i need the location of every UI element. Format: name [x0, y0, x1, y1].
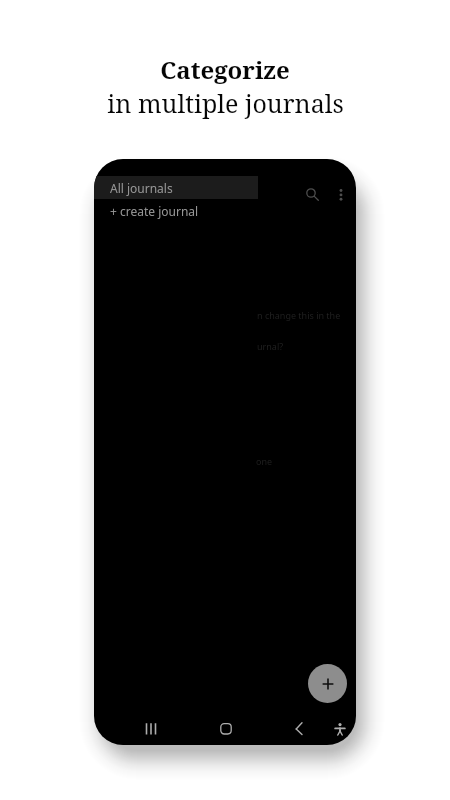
staticText: All journals	[110, 180, 173, 196]
staticText: n change this in the	[257, 309, 341, 321]
staticText: one	[256, 455, 273, 467]
button[interactable]: + create journal	[94, 200, 356, 222]
button[interactable]: Accessibility menu	[328, 717, 352, 741]
staticText: in multiple journals	[107, 86, 344, 120]
button[interactable]: Add journal	[308, 664, 347, 703]
button[interactable]: Search	[301, 183, 325, 207]
button[interactable]: Back	[286, 717, 310, 741]
staticText: urnal?	[257, 340, 284, 352]
staticText: + create journal	[110, 203, 199, 219]
button[interactable]: Home	[214, 717, 238, 741]
button[interactable]: More options	[329, 182, 353, 206]
staticText: Categorize	[160, 53, 290, 86]
button[interactable]: All journals	[94, 176, 258, 199]
button[interactable]: Recent apps	[139, 717, 163, 741]
